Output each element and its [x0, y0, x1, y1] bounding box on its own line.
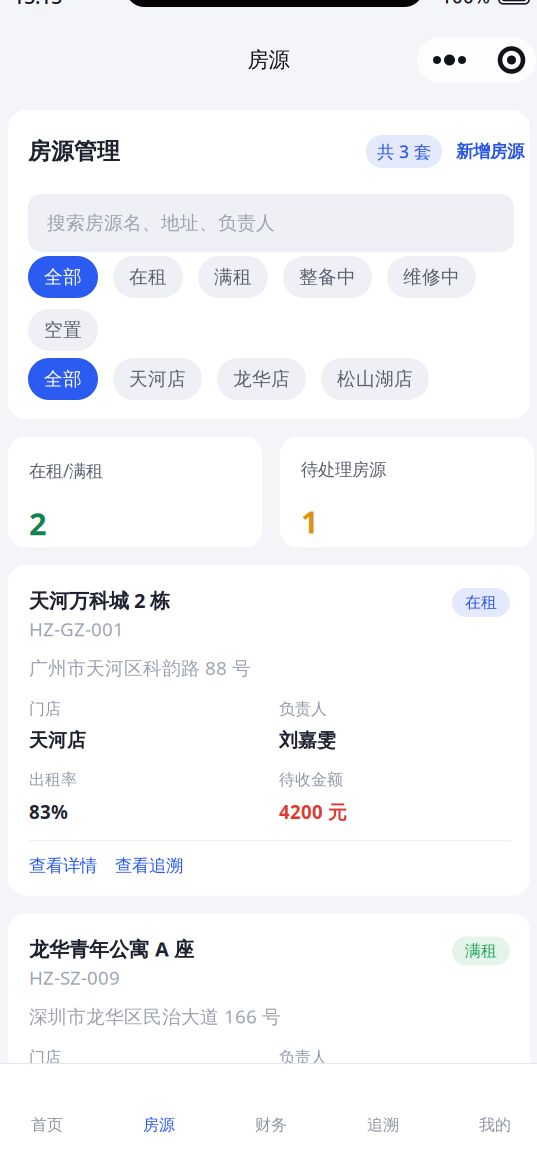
staticText: 天河店 [129, 367, 186, 390]
staticText: 深圳市龙华区民治大道 166 号 [29, 1004, 281, 1029]
staticText: 待收金额 [279, 1118, 343, 1138]
staticText: 空置 [44, 318, 82, 341]
button[interactable]: 全部 [28, 358, 98, 400]
staticText: 龙华青年公寓 A 座 [29, 935, 194, 962]
staticText: 100% [441, 0, 490, 9]
button[interactable]: 财务 [215, 1064, 327, 1158]
staticText: 负责人 [279, 1048, 327, 1067]
staticText: 2 [29, 503, 47, 544]
staticText: 我的 [479, 1115, 511, 1135]
staticText: 在租/满租 [29, 459, 103, 482]
staticText: 全部 [44, 265, 82, 288]
button[interactable]: More options [417, 37, 536, 82]
staticText: 待收金额 [279, 770, 343, 789]
staticText: 查看追溯 [115, 855, 183, 876]
staticText: 天河万科城 2 栋 [29, 587, 170, 614]
staticText: 在租 [129, 265, 167, 288]
button[interactable]: 查看追溯 [115, 855, 183, 876]
button[interactable]: 满租 [452, 936, 510, 965]
button[interactable]: 房源 [103, 1064, 215, 1158]
staticText: 财务 [255, 1115, 287, 1135]
staticText: 15:15 [13, 0, 62, 10]
staticText: 房源 [247, 47, 289, 73]
button[interactable]: 维修中 [387, 256, 476, 298]
staticText: 满租 [214, 265, 252, 288]
staticText: 维修中 [403, 265, 460, 288]
staticText: 广州市天河区科韵路 88 号 [29, 655, 251, 680]
staticText: 待处理房源 [301, 459, 386, 480]
staticText: 共 3 套 [377, 140, 431, 163]
staticText: 负责人 [279, 699, 327, 719]
button[interactable]: 龙华店 [217, 358, 306, 400]
staticText: 83% [29, 799, 68, 824]
staticText: 松山湖店 [337, 367, 413, 390]
staticText: HZ-SZ-009 [29, 965, 120, 990]
button[interactable]: 我的 [439, 1064, 537, 1158]
button[interactable]: 满租 [198, 256, 268, 298]
staticText: 刘嘉雯 [279, 729, 336, 752]
button[interactable]: 整备中 [283, 256, 372, 298]
button[interactable]: 追溯 [327, 1064, 439, 1158]
button[interactable]: 松山湖店 [321, 358, 429, 400]
staticText: 出租率 [29, 1118, 77, 1138]
staticText: 门店 [29, 699, 61, 719]
button[interactable]: 天河店 [113, 358, 202, 400]
staticText: 龙华店 [233, 367, 290, 390]
staticText: HZ-GZ-001 [29, 617, 124, 641]
button[interactable]: 查看详情 [29, 855, 97, 876]
staticText: 搜索房源名、地址、负责人 [47, 211, 275, 234]
staticText: 天河店 [29, 729, 86, 752]
staticText: 在租 [465, 593, 497, 612]
button[interactable]: 在租 [452, 588, 510, 617]
staticText: 全部 [44, 367, 82, 390]
staticText: 房源管理 [28, 138, 120, 165]
staticText: 出租率 [29, 770, 77, 789]
staticText: 首页 [31, 1115, 63, 1135]
button[interactable]: 首页 [0, 1064, 103, 1158]
staticText: 新增房源 [456, 141, 524, 162]
button[interactable]: 新增房源 [456, 141, 524, 162]
staticText: 1 [301, 501, 319, 542]
button[interactable]: 搜索房源名、地址、负责人 [28, 194, 514, 252]
staticText: 整备中 [299, 265, 356, 288]
staticText: 门店 [29, 1048, 61, 1067]
staticText: 房源 [143, 1115, 175, 1135]
button[interactable]: 空置 [28, 309, 98, 351]
staticText: 满租 [465, 941, 497, 961]
staticText: 追溯 [367, 1115, 399, 1135]
staticText: 4200 元 [279, 799, 347, 824]
button[interactable]: 在租 [113, 256, 183, 298]
staticText: 查看详情 [29, 855, 97, 876]
button[interactable]: 全部 [28, 256, 98, 298]
